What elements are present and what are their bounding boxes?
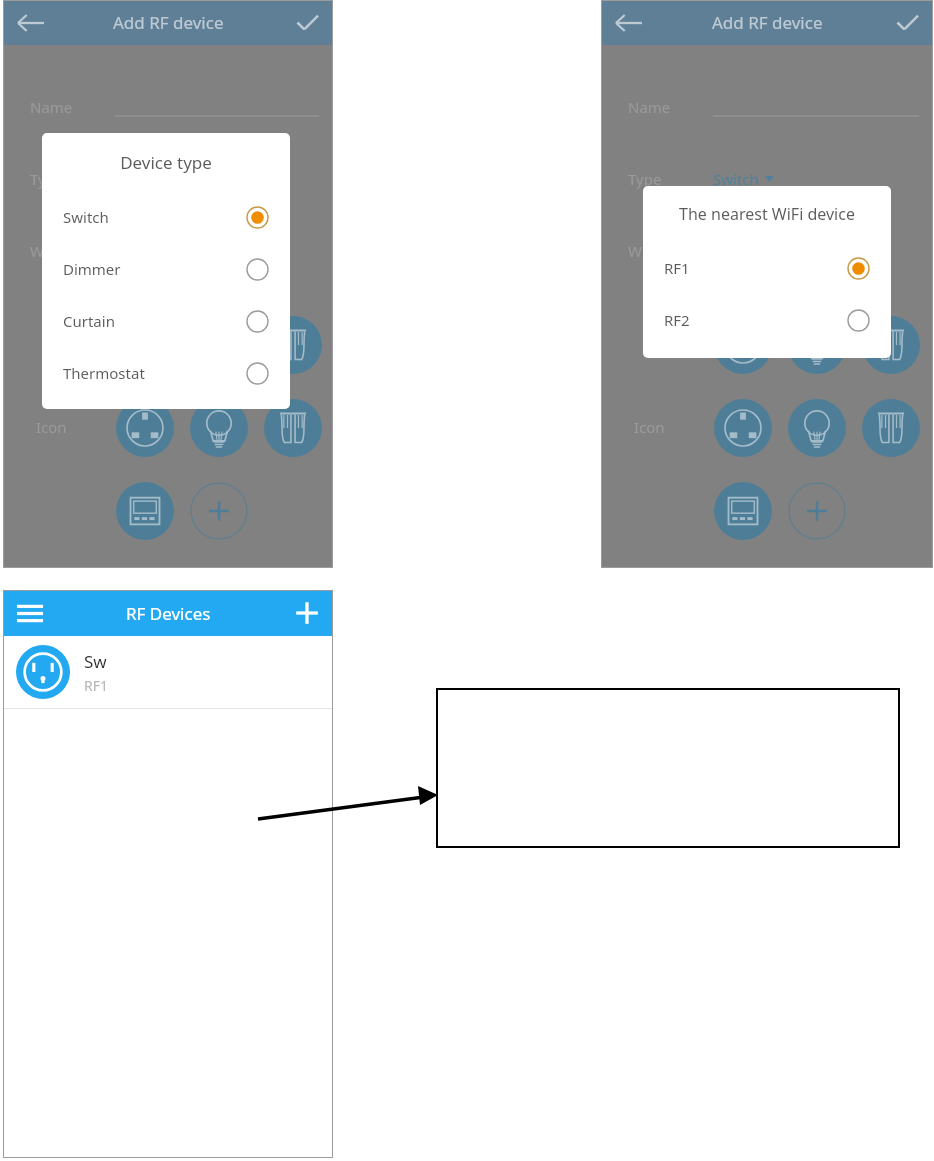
button[interactable]: Bulb icon: [190, 399, 248, 457]
button[interactable]: Back: [3, 0, 333, 45]
button[interactable]: Curtain icon: [264, 399, 322, 457]
button[interactable]: Curtain icon: [862, 399, 920, 457]
staticText: Dimmer: [63, 259, 233, 279]
button[interactable]: Menu: [17, 605, 43, 622]
button[interactable]: Socket icon: [714, 316, 772, 374]
button[interactable]: Bulb icon: [788, 316, 846, 374]
button[interactable]: Curtain icon: [264, 316, 322, 374]
staticText: WiFi: [30, 241, 115, 261]
button[interactable]: Add icon: [190, 482, 248, 540]
staticText: Curtain: [63, 311, 233, 331]
staticText: The nearest WiFi device: [643, 203, 891, 225]
staticText: Add RF device: [712, 11, 823, 34]
button[interactable]: Socket icon: [116, 316, 174, 374]
staticText: Device type: [42, 151, 290, 174]
button[interactable]: Menu: [3, 590, 333, 636]
staticText: RF1: [84, 676, 108, 695]
staticText: RF Devices: [126, 602, 211, 625]
button[interactable]: Back: [17, 13, 44, 33]
button[interactable]: Bulb icon: [788, 399, 846, 457]
button[interactable]: Add device: [295, 601, 319, 625]
button[interactable]: Back: [615, 13, 642, 33]
staticText: Icon: [634, 417, 665, 437]
staticText: WiFi: [628, 241, 713, 261]
staticText: RF2: [664, 310, 834, 330]
button[interactable]: Bulb icon: [190, 316, 248, 374]
button[interactable]: RF1: [643, 242, 891, 294]
button[interactable]: Curtain: [42, 295, 290, 347]
staticText: Switch: [63, 207, 233, 227]
button[interactable]: Curtain icon: [862, 316, 920, 374]
button[interactable]: Thermostat: [42, 347, 290, 399]
staticText: Type: [30, 169, 115, 189]
staticText: Switch: [713, 169, 759, 189]
staticText: RF1: [664, 258, 834, 278]
staticText: Name: [30, 97, 115, 117]
staticText: Name: [628, 97, 713, 117]
button[interactable]: Socket icon: [116, 399, 174, 457]
button[interactable]: Switch: [713, 169, 774, 189]
staticText: Type: [628, 169, 713, 189]
button[interactable]: Dimmer: [42, 243, 290, 295]
button[interactable]: Socket icon: [714, 399, 772, 457]
button[interactable]: Switch: [42, 191, 290, 243]
button[interactable]: Thermostat icon: [116, 482, 174, 540]
button[interactable]: Confirm: [896, 11, 919, 34]
button[interactable]: Confirm: [296, 11, 319, 34]
staticText: Thermostat: [63, 363, 233, 383]
staticText: Add RF device: [113, 11, 224, 34]
button[interactable]: Back: [601, 0, 933, 45]
button[interactable]: Add icon: [788, 482, 846, 540]
staticText: Icon: [36, 417, 67, 437]
button[interactable]: Thermostat icon: [714, 482, 772, 540]
staticText: Sw: [84, 650, 107, 673]
button[interactable]: RF2: [643, 294, 891, 346]
button[interactable]: Sw: [3, 636, 333, 708]
